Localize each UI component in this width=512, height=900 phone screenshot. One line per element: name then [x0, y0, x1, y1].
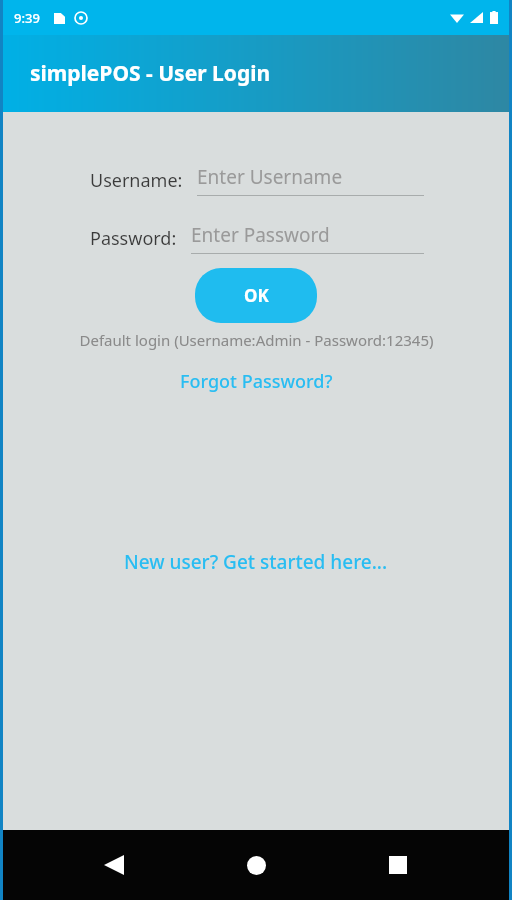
staticText: Forgot Password?: [180, 369, 333, 394]
staticText: New user? Get started here...: [124, 549, 388, 575]
button[interactable]: Enter Username: [197, 164, 424, 196]
staticText: Username:: [90, 168, 183, 193]
button[interactable]: Recent apps: [370, 837, 426, 893]
staticText: Enter Username: [197, 164, 343, 190]
button[interactable]: OK: [195, 268, 317, 323]
staticText: Default login (Username:Admin - Password…: [79, 330, 434, 350]
staticText: 9:39: [14, 9, 40, 27]
button[interactable]: New user? Get started here...: [112, 545, 400, 579]
staticText: Password:: [90, 226, 177, 251]
button[interactable]: Home: [228, 837, 284, 893]
button[interactable]: Forgot Password?: [170, 366, 343, 397]
staticText: Enter Password: [191, 222, 330, 248]
staticText: OK: [244, 284, 269, 307]
button[interactable]: Back: [86, 837, 142, 893]
staticText: simplePOS - User Login: [30, 59, 271, 88]
button[interactable]: Enter Password: [191, 222, 424, 254]
